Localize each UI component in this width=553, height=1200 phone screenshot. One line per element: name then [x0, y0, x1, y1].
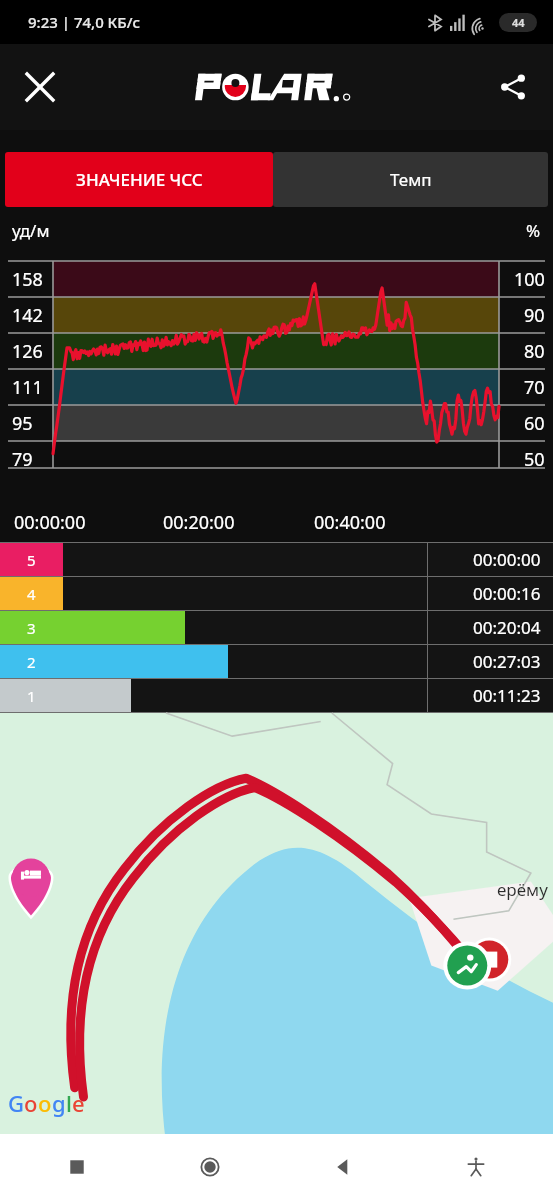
staticText: 00:11:23: [473, 684, 541, 707]
button[interactable]: Share: [485, 59, 541, 115]
staticText: 70: [524, 375, 545, 400]
button[interactable]: 2: [0, 645, 553, 678]
staticText: 3: [27, 618, 36, 638]
staticText: 111: [12, 375, 43, 400]
staticText: 1: [27, 686, 36, 706]
staticText: Темп: [390, 168, 432, 191]
staticText: 00:20:00: [163, 510, 235, 535]
staticText: 100: [514, 267, 545, 292]
staticText: уд/м: [12, 219, 50, 242]
button[interactable]: Back: [319, 1143, 367, 1191]
staticText: 80: [524, 339, 545, 364]
staticText: o: [38, 1088, 52, 1118]
staticText: 00:20:04: [473, 616, 541, 639]
staticText: 00:40:00: [314, 510, 386, 535]
staticText: ЗНАЧЕНИЕ ЧСС: [76, 168, 203, 191]
staticText: 00:00:16: [473, 582, 541, 605]
staticText: 5: [27, 550, 36, 570]
staticText: 2: [27, 652, 36, 672]
staticText: 44: [512, 15, 525, 30]
button[interactable]: 5: [0, 543, 553, 576]
staticText: 90: [524, 303, 545, 328]
button[interactable]: ерёму: [0, 713, 553, 1134]
staticText: 00:00:00: [473, 548, 541, 571]
button[interactable]: 1: [0, 679, 553, 712]
staticText: 9:23 | 74,0 КБ/с: [28, 12, 140, 32]
staticText: 95: [12, 411, 33, 436]
staticText: l: [66, 1088, 72, 1118]
staticText: 126: [12, 339, 43, 364]
staticText: e: [72, 1088, 85, 1118]
staticText: 60: [524, 411, 545, 436]
staticText: G: [8, 1088, 24, 1118]
button[interactable]: Close: [12, 59, 68, 115]
staticText: ерёму: [497, 878, 548, 901]
staticText: 00:27:03: [473, 650, 541, 673]
button[interactable]: ЗНАЧЕНИЕ ЧСС: [5, 152, 273, 207]
staticText: 50: [524, 447, 545, 472]
staticText: o: [24, 1088, 38, 1118]
button[interactable]: Accessibility: [452, 1143, 500, 1191]
staticText: 4: [27, 584, 36, 604]
staticText: 142: [12, 303, 43, 328]
staticText: %: [526, 219, 541, 242]
button[interactable]: Recents: [53, 1143, 101, 1191]
button[interactable]: Home: [186, 1143, 234, 1191]
staticText: 79: [12, 447, 33, 472]
staticText: 00:00:00: [14, 510, 86, 535]
staticText: 158: [12, 267, 43, 292]
button[interactable]: 4: [0, 577, 553, 610]
button[interactable]: Темп: [273, 152, 548, 207]
staticText: g: [52, 1088, 66, 1118]
button[interactable]: 3: [0, 611, 553, 644]
